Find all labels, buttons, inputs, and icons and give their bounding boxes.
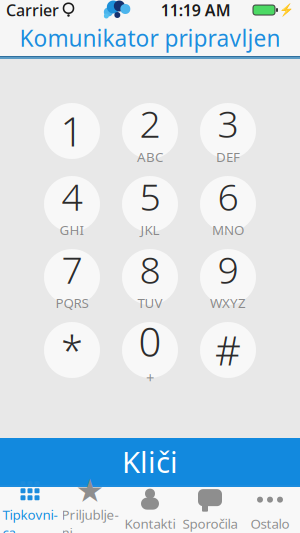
- staticText: Tipkovnica: [2, 506, 57, 533]
- button[interactable]: 8: [122, 249, 178, 305]
- staticText: Priljubljeni: [61, 506, 118, 533]
- staticText: Komunikator pripravljen: [19, 23, 280, 53]
- button[interactable]: Kontakti: [120, 487, 180, 533]
- staticText: 7: [61, 244, 82, 294]
- button[interactable]: 9: [200, 249, 256, 305]
- staticText: 3: [217, 98, 238, 148]
- button[interactable]: 1: [44, 103, 100, 159]
- staticText: 2: [139, 98, 160, 148]
- button[interactable]: 2: [122, 103, 178, 159]
- staticText: Ostalo: [250, 515, 289, 532]
- staticText: +: [146, 368, 154, 387]
- staticText: JKL: [140, 221, 159, 239]
- button[interactable]: #: [200, 322, 256, 378]
- button[interactable]: 4: [44, 176, 100, 232]
- staticText: Kliči: [122, 442, 178, 481]
- staticText: PQRS: [55, 294, 88, 312]
- staticText: 5: [139, 171, 160, 221]
- staticText: #: [215, 323, 241, 376]
- button[interactable]: 3: [200, 103, 256, 159]
- button[interactable]: 7: [44, 249, 100, 305]
- staticText: WXYZ: [210, 294, 246, 312]
- staticText: TUV: [137, 294, 162, 312]
- staticText: ⚡: [279, 3, 294, 17]
- staticText: ★: [75, 473, 104, 509]
- staticText: MNO: [212, 221, 244, 239]
- staticText: Kontakti: [124, 515, 175, 532]
- staticText: 9: [217, 244, 238, 294]
- staticText: 4: [61, 171, 82, 221]
- button[interactable]: 0: [122, 322, 178, 378]
- button[interactable]: Sporočila: [180, 487, 240, 533]
- staticText: DEF: [216, 148, 240, 166]
- staticText: Carrier: [6, 0, 59, 21]
- staticText: 1: [60, 104, 83, 157]
- staticText: 11:19 AM: [161, 0, 231, 21]
- button[interactable]: ★: [60, 487, 120, 533]
- staticText: GHI: [59, 221, 84, 239]
- button[interactable]: Tipkovnica: [0, 487, 60, 533]
- button[interactable]: Ostalo: [240, 487, 300, 533]
- staticText: ABC: [137, 148, 163, 166]
- staticText: Sporočila: [182, 515, 237, 532]
- staticText: 6: [217, 171, 238, 221]
- button[interactable]: *: [44, 322, 100, 378]
- staticText: 8: [139, 244, 160, 294]
- button[interactable]: 6: [200, 176, 256, 232]
- staticText: 0: [138, 315, 161, 368]
- button[interactable]: Kliči: [0, 438, 300, 485]
- staticText: *: [61, 323, 83, 376]
- button[interactable]: 5: [122, 176, 178, 232]
